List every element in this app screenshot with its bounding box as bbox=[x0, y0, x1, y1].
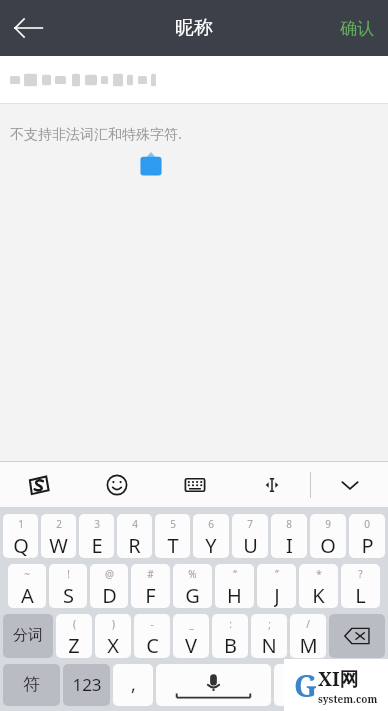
staticText: D bbox=[102, 582, 117, 608]
staticText: , bbox=[131, 672, 136, 697]
button[interactable]: * bbox=[299, 564, 338, 608]
staticText: U bbox=[243, 532, 258, 558]
staticText: 0 bbox=[364, 517, 370, 531]
button[interactable]: Voice input / Space bbox=[156, 664, 271, 706]
button[interactable]: 符 bbox=[3, 664, 60, 706]
staticText: V bbox=[185, 632, 197, 658]
staticText: Y bbox=[205, 532, 217, 558]
button[interactable]: 5 bbox=[155, 514, 190, 558]
staticText: A bbox=[21, 582, 34, 608]
button[interactable]: _ bbox=[173, 614, 209, 658]
button[interactable]: 7 bbox=[232, 514, 268, 558]
button[interactable]: “ bbox=[215, 564, 254, 608]
staticText: W bbox=[49, 532, 68, 558]
button[interactable]: Enter bbox=[317, 664, 385, 706]
staticText: 昵称 bbox=[175, 16, 213, 40]
button[interactable]: @ bbox=[90, 564, 128, 608]
staticText: 4 bbox=[132, 517, 138, 531]
staticText: - bbox=[150, 617, 154, 631]
staticText: ? bbox=[358, 567, 363, 581]
button[interactable]: 2 bbox=[41, 514, 76, 558]
staticText: 6 bbox=[208, 517, 214, 531]
staticText: 123 bbox=[72, 673, 102, 696]
button[interactable]: ! bbox=[49, 564, 87, 608]
staticText: “ bbox=[233, 567, 237, 581]
staticText: 确认 bbox=[340, 18, 374, 39]
button[interactable]: 8 bbox=[271, 514, 307, 558]
staticText: % bbox=[188, 567, 197, 581]
staticText: 1 bbox=[18, 517, 24, 531]
staticText: : bbox=[229, 617, 232, 631]
button[interactable]: - bbox=[134, 614, 170, 658]
staticText: R bbox=[128, 532, 141, 558]
staticText: 9 bbox=[325, 517, 331, 531]
button[interactable]: % bbox=[173, 564, 212, 608]
staticText: F bbox=[145, 582, 156, 608]
staticText: 5 bbox=[170, 517, 176, 531]
staticText: XI网 bbox=[318, 666, 359, 692]
staticText: M bbox=[299, 632, 318, 658]
staticText: / bbox=[306, 617, 310, 631]
staticText: ” bbox=[275, 567, 279, 581]
button[interactable]: 4 bbox=[117, 514, 152, 558]
button[interactable]: : bbox=[212, 614, 248, 658]
staticText: N bbox=[261, 632, 277, 658]
staticText: J bbox=[274, 582, 280, 608]
button[interactable]: Hide keyboard bbox=[311, 462, 388, 507]
staticText: B bbox=[224, 632, 237, 658]
staticText: system.com bbox=[318, 692, 378, 706]
button[interactable]: ) bbox=[95, 614, 131, 658]
staticText: ( bbox=[73, 617, 76, 631]
button[interactable]: ( bbox=[56, 614, 92, 658]
button[interactable]: ? bbox=[341, 564, 380, 608]
button[interactable]: 123 bbox=[63, 664, 110, 706]
staticText: K bbox=[312, 582, 325, 608]
staticText: Z bbox=[68, 632, 80, 658]
button[interactable]: 确认 bbox=[326, 0, 388, 56]
staticText: S bbox=[63, 582, 74, 608]
button[interactable]: Sogou input bbox=[0, 462, 78, 507]
staticText: L bbox=[355, 582, 366, 608]
button[interactable]: 分词 bbox=[3, 614, 53, 658]
button[interactable]: ; bbox=[251, 614, 287, 658]
button[interactable]: 9 bbox=[310, 514, 346, 558]
staticText: G bbox=[185, 582, 200, 608]
staticText: ; bbox=[268, 617, 271, 631]
button[interactable]: 6 bbox=[193, 514, 229, 558]
staticText: E bbox=[91, 532, 103, 558]
staticText: 分词 bbox=[13, 626, 43, 645]
button[interactable]: 3 bbox=[79, 514, 114, 558]
staticText: O bbox=[320, 532, 336, 558]
button[interactable]: ~ bbox=[8, 564, 46, 608]
staticText: G bbox=[294, 665, 318, 706]
button[interactable]: 。 bbox=[274, 664, 314, 706]
staticText: ! bbox=[67, 567, 70, 581]
staticText: @ bbox=[105, 567, 114, 581]
button[interactable]: Backspace bbox=[329, 614, 385, 658]
staticText: T bbox=[167, 532, 179, 558]
button[interactable]: 1 bbox=[3, 514, 38, 558]
staticText: ) bbox=[112, 617, 115, 631]
staticText: Q bbox=[13, 532, 29, 558]
staticText: _ bbox=[189, 617, 194, 631]
staticText: 2 bbox=[56, 517, 62, 531]
staticText: 7 bbox=[247, 517, 253, 531]
button[interactable]: ” bbox=[257, 564, 296, 608]
button[interactable]: / bbox=[290, 614, 326, 658]
button[interactable]: Emoji bbox=[78, 462, 156, 507]
staticText: X bbox=[107, 632, 119, 658]
button[interactable]: # bbox=[131, 564, 170, 608]
button[interactable]: Move cursor bbox=[233, 462, 310, 507]
staticText: P bbox=[361, 532, 374, 558]
staticText: 不支持非法词汇和特殊字符. bbox=[10, 124, 182, 143]
staticText: # bbox=[147, 567, 154, 581]
button[interactable]: 0 bbox=[349, 514, 385, 558]
staticText: ~ bbox=[24, 567, 30, 581]
button[interactable]: Keyboard layout bbox=[156, 462, 233, 507]
button[interactable]: , bbox=[113, 664, 153, 706]
staticText: 。 bbox=[287, 675, 302, 694]
button[interactable] bbox=[0, 56, 388, 103]
staticText: * bbox=[316, 567, 322, 581]
button[interactable]: Back bbox=[0, 0, 56, 56]
staticText: C bbox=[146, 632, 159, 658]
